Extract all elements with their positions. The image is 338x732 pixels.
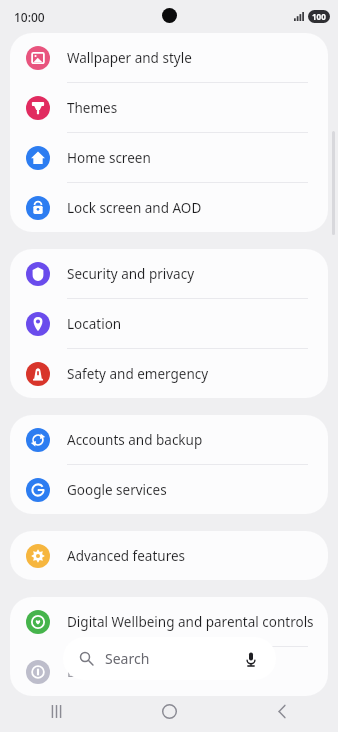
staticText: Security and privacy [67, 265, 195, 283]
button[interactable]: Safety and emergency [10, 349, 328, 398]
staticText: 10:00 [14, 9, 45, 25]
button[interactable]: Lock screen and AOD [10, 183, 328, 232]
staticText: Digital Wellbeing and parental controls [67, 613, 314, 631]
button[interactable]: Google services [10, 465, 328, 514]
button[interactable]: Advanced features [10, 531, 328, 580]
button[interactable]: Back [256, 690, 308, 732]
button[interactable]: Voice search [241, 649, 261, 669]
button[interactable]: Security and privacy [10, 249, 328, 299]
staticText: Device care [67, 663, 140, 681]
staticText: Search [105, 649, 150, 668]
button[interactable]: Recent apps [30, 690, 82, 732]
button[interactable]: Device care [10, 647, 328, 696]
staticText: 100 [312, 11, 326, 22]
button[interactable]: Themes [10, 83, 328, 133]
staticText: Google services [67, 481, 167, 499]
button[interactable]: Accounts and backup [10, 415, 328, 465]
button[interactable]: Search [63, 637, 276, 680]
staticText: Location [67, 315, 122, 333]
button[interactable]: Home [143, 690, 195, 732]
staticText: Wallpaper and style [67, 49, 192, 67]
staticText: Accounts and backup [67, 431, 203, 449]
button[interactable]: Wallpaper and style [10, 33, 328, 83]
button[interactable]: Home screen [10, 133, 328, 183]
staticText: Safety and emergency [67, 365, 209, 383]
button[interactable]: Digital Wellbeing and parental controls [10, 597, 328, 647]
staticText: Home screen [67, 149, 151, 167]
staticText: Lock screen and AOD [67, 199, 202, 217]
button[interactable]: Location [10, 299, 328, 349]
staticText: Advanced features [67, 547, 186, 565]
staticText: Themes [67, 99, 118, 117]
